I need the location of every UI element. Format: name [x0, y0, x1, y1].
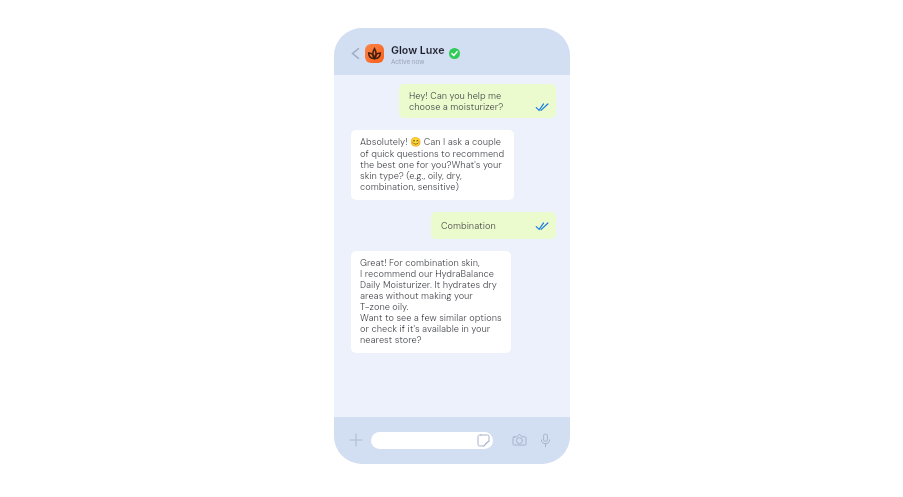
button[interactable]: Camera	[509, 429, 529, 449]
button[interactable]: Message	[371, 432, 493, 449]
staticText: Hey! Can you help me choose a moisturize…	[409, 90, 504, 112]
button[interactable]: Hey! Can you help me choose a moisturize…	[399, 84, 556, 118]
button[interactable]: Back	[334, 28, 570, 75]
button[interactable]: Combination	[431, 212, 556, 239]
staticText: Great! For combination skin, I recommend…	[360, 257, 502, 345]
staticText: Glow Luxe	[391, 44, 445, 57]
staticText: Active now	[391, 58, 425, 66]
button[interactable]: Absolutely! 😊 Can I ask a couple of quic…	[351, 130, 514, 200]
button[interactable]: Back	[349, 46, 361, 61]
staticText: Combination	[441, 220, 496, 231]
button[interactable]: Microphone	[535, 430, 555, 450]
button[interactable]: Add attachment	[346, 430, 366, 450]
staticText: Absolutely! 😊 Can I ask a couple of quic…	[360, 136, 505, 192]
button[interactable]: Great! For combination skin, I recommend…	[351, 251, 511, 353]
